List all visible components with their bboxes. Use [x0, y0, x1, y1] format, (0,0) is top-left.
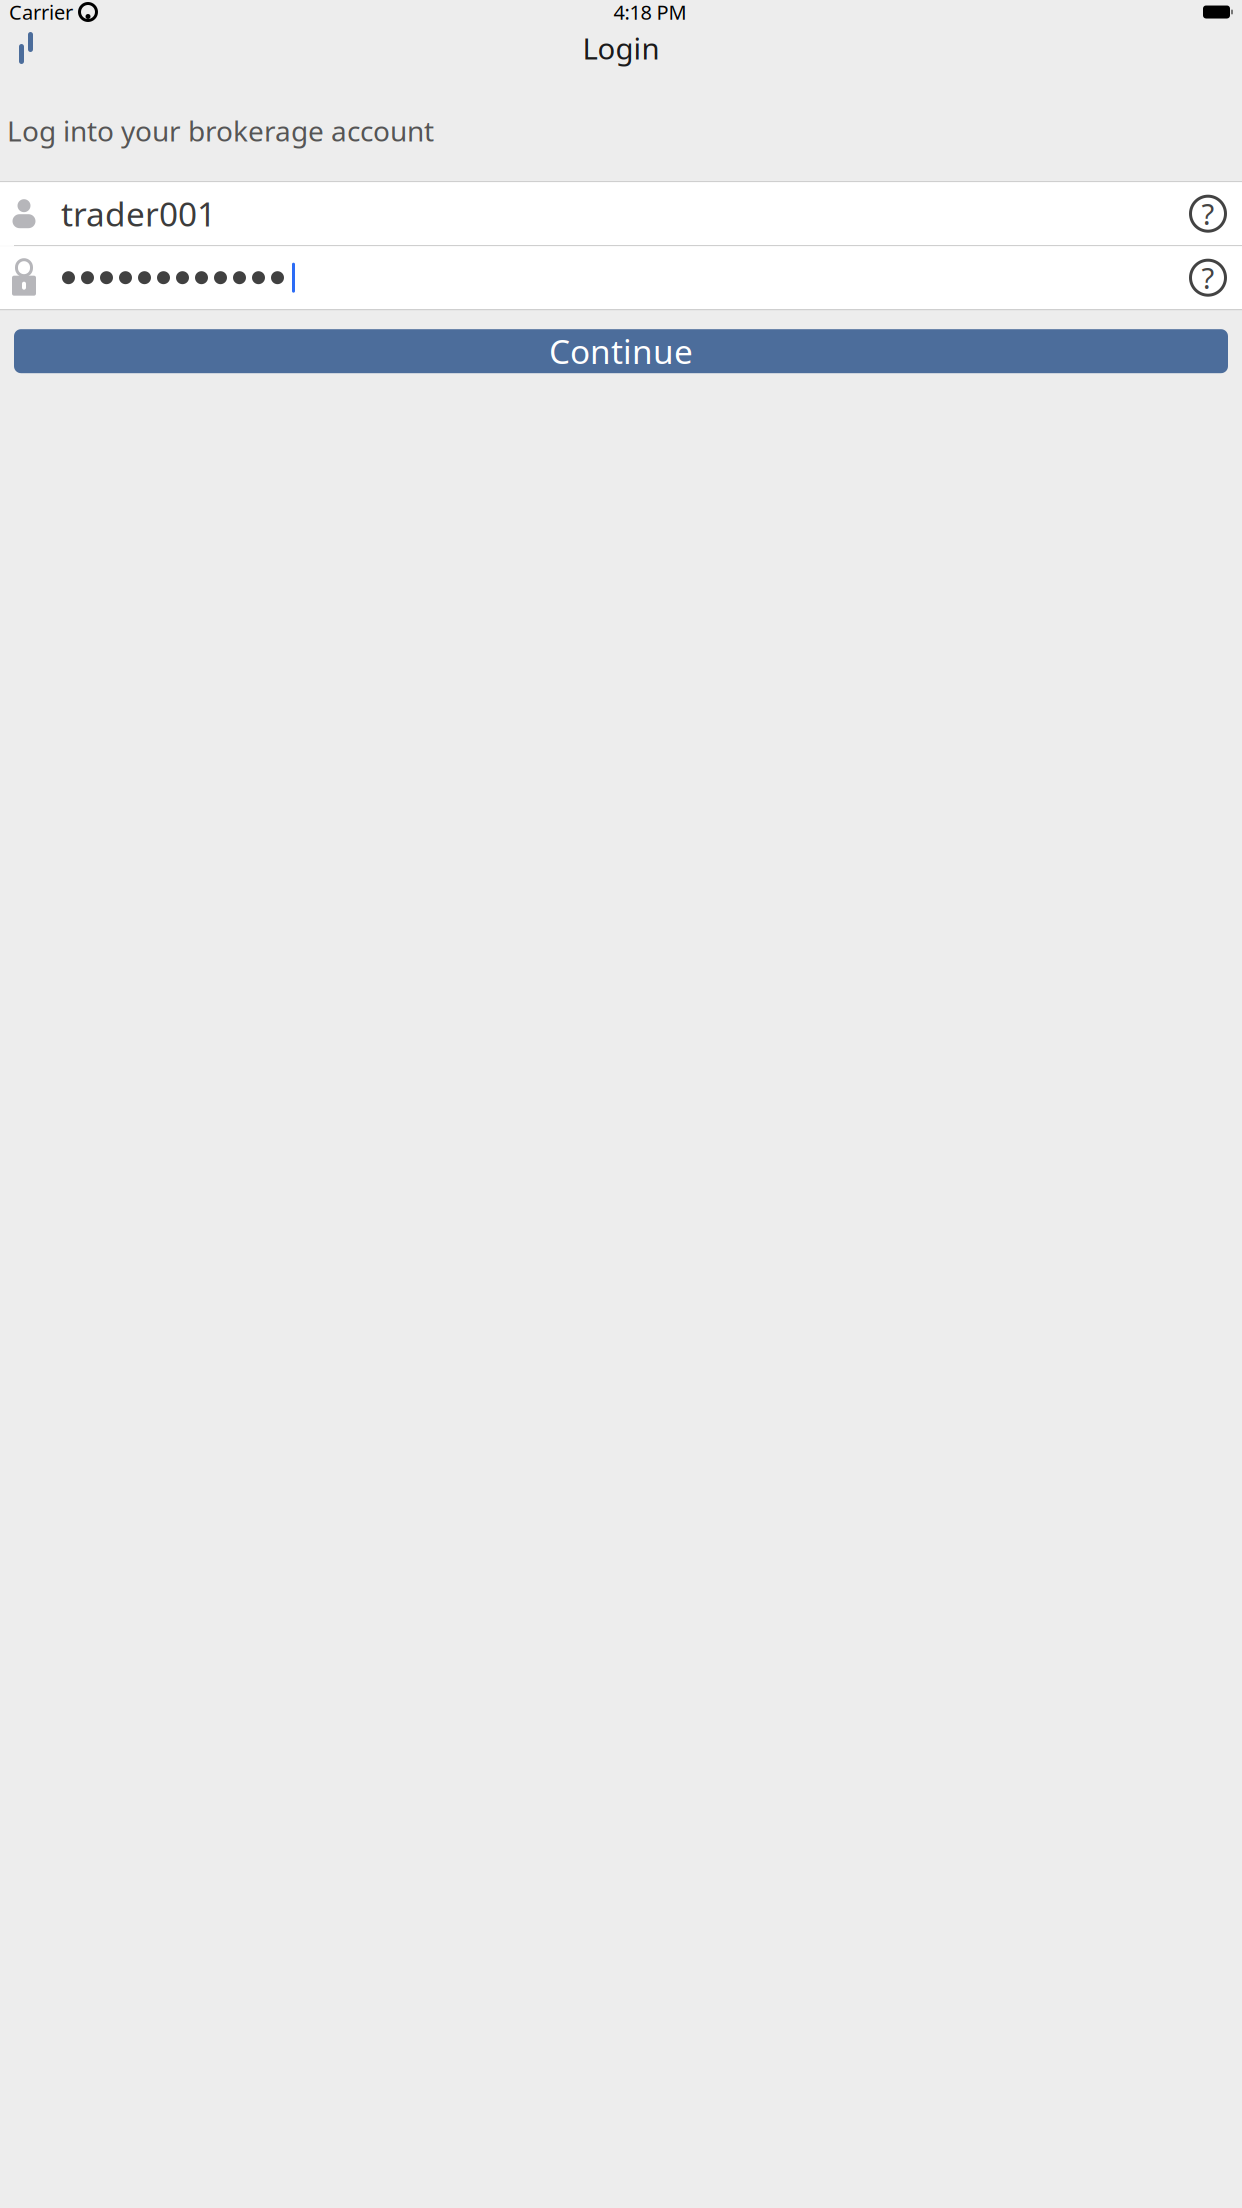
staticText: Continue — [549, 329, 693, 373]
staticText: Carrier — [9, 0, 73, 25]
staticText: ? — [1201, 194, 1214, 233]
button[interactable]: Back — [0, 26, 52, 70]
staticText: ? — [1201, 258, 1214, 297]
staticText: Login — [582, 28, 659, 67]
staticText: Log into your brokerage account — [7, 112, 434, 149]
button[interactable]: Password help — [1179, 249, 1237, 307]
button[interactable]: Username help — [1179, 185, 1237, 243]
button[interactable]: Continue — [14, 329, 1228, 373]
staticText: 4:18 PM — [613, 0, 686, 25]
staticText: trader001 — [61, 192, 216, 236]
